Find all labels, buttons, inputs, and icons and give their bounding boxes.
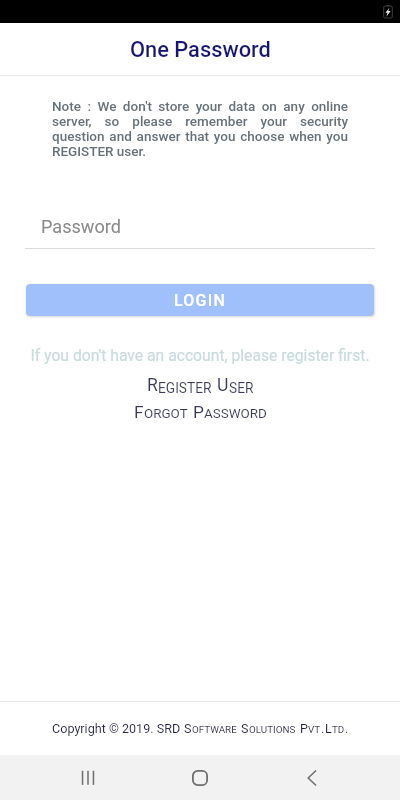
staticText: SER xyxy=(229,380,254,396)
button[interactable]: R xyxy=(0,375,400,396)
staticText: S xyxy=(241,721,249,736)
staticText: P xyxy=(300,721,308,736)
staticText: U xyxy=(217,375,229,396)
button[interactable]: Home xyxy=(176,755,224,800)
staticText: Note : We don't store your data on any o… xyxy=(52,98,348,159)
staticText: S xyxy=(184,721,192,736)
staticText: OFTWARE xyxy=(192,724,237,736)
staticText: LOGIN xyxy=(174,291,226,310)
staticText: OLUTIONS xyxy=(249,724,296,736)
staticText: One Password xyxy=(130,37,271,63)
staticText: ORGOT xyxy=(144,406,188,422)
staticText: F xyxy=(134,402,144,422)
staticText: P xyxy=(193,402,204,422)
button[interactable]: LOGIN xyxy=(26,284,374,316)
staticText: Password xyxy=(41,216,121,237)
staticText: R xyxy=(147,375,158,396)
button[interactable]: Recents xyxy=(64,755,112,800)
staticText: . xyxy=(321,721,325,736)
button[interactable]: F xyxy=(0,402,400,422)
button[interactable]: Back xyxy=(288,755,336,800)
staticText: Copyright © 2019. SRD xyxy=(52,721,184,736)
staticText: L xyxy=(325,721,332,736)
staticText: VT xyxy=(308,724,321,736)
staticText: If you don't have an account, please reg… xyxy=(0,346,400,364)
staticText: ASSWORD xyxy=(204,406,267,422)
staticText: EGISTER xyxy=(158,380,212,396)
staticText: TD xyxy=(332,724,345,736)
staticText: . xyxy=(345,721,349,736)
